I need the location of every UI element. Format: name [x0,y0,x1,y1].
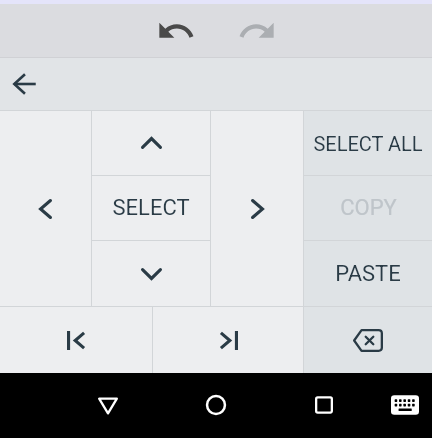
button[interactable]: Move to start [0,307,152,373]
button[interactable]: Recents [302,383,346,427]
button[interactable]: Move cursor right [211,111,303,306]
button[interactable]: SELECT [92,176,210,240]
button[interactable]: Back [0,60,48,108]
button[interactable]: COPY [304,176,432,240]
staticText: SELECT [112,195,190,221]
button[interactable]: Undo [152,7,200,55]
button[interactable]: Switch keyboard [383,383,427,427]
button[interactable]: PASTE [304,241,432,306]
button[interactable]: Move to end [153,307,303,373]
button[interactable]: Home [194,383,238,427]
button[interactable]: Move cursor down [92,241,210,306]
staticText: COPY [340,195,397,221]
button[interactable]: SELECT ALL [304,111,432,175]
button[interactable]: Delete [304,307,432,373]
button[interactable]: Back [86,384,130,428]
button[interactable]: Move cursor left [0,111,91,306]
staticText: SELECT ALL [313,132,423,155]
staticText: PASTE [335,261,401,287]
button[interactable]: Move cursor up [92,111,210,175]
button[interactable]: Redo [233,7,281,55]
